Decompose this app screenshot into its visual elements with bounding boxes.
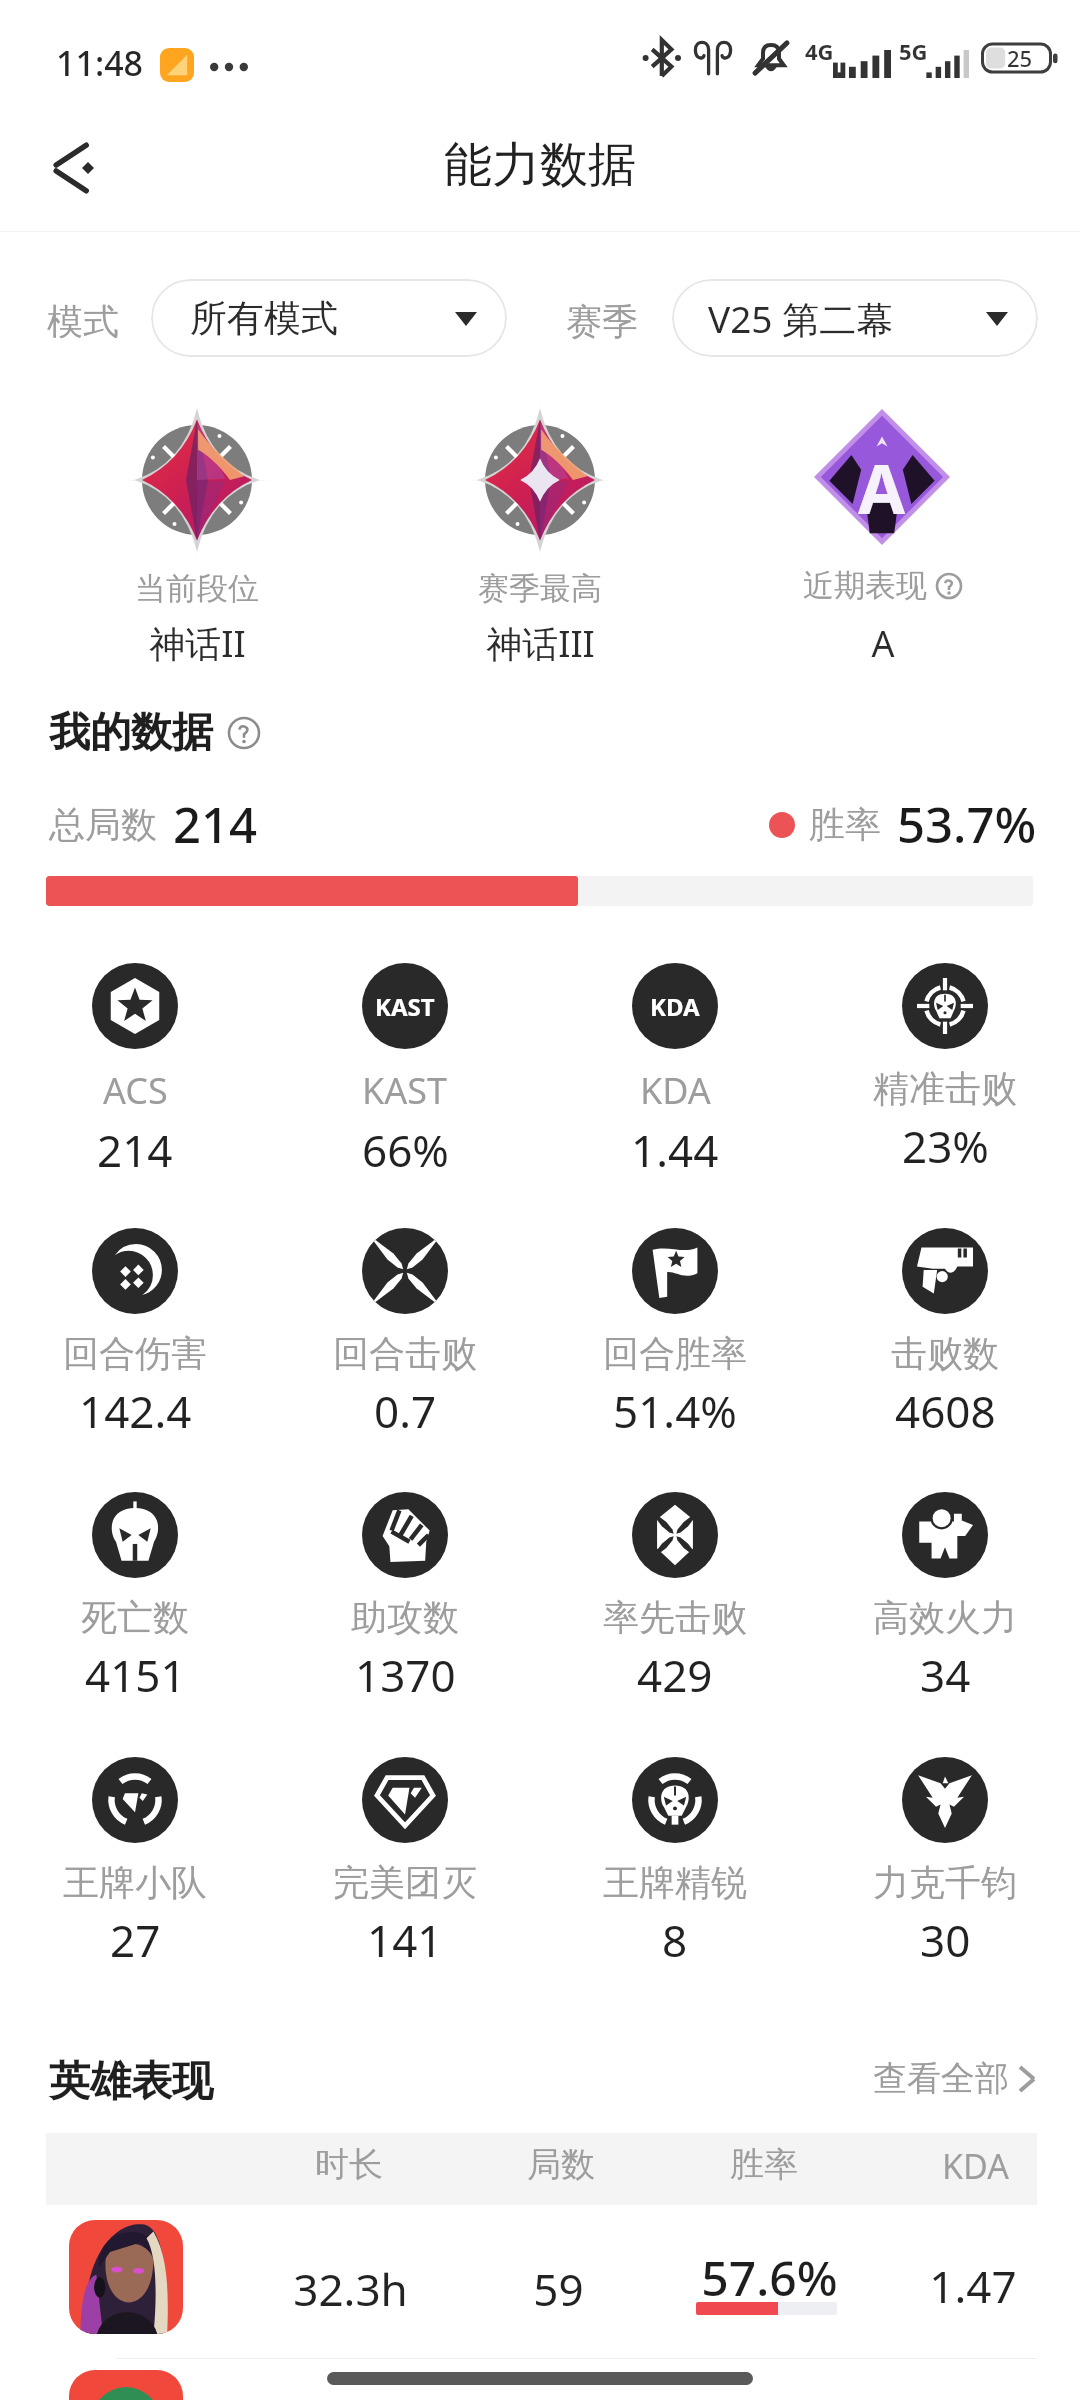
- staticText: 力克千钧: [873, 1860, 1017, 1905]
- staticText: 近期表现: [803, 566, 927, 605]
- button[interactable]: [69, 2370, 183, 2400]
- button[interactable]: 回合击败: [285, 1228, 525, 1441]
- button[interactable]: [69, 2220, 183, 2334]
- staticText: 精准击败: [873, 1066, 1017, 1111]
- staticText: KDA: [650, 990, 700, 1023]
- button[interactable]: KDA: [555, 963, 795, 1180]
- button[interactable]: 查看全部: [873, 2057, 1037, 2100]
- button[interactable]: 精准击败: [825, 963, 1065, 1176]
- staticText: 能力数据: [444, 135, 636, 195]
- staticText: 57.6%: [701, 2245, 838, 2310]
- button[interactable]: 所有模式: [151, 279, 507, 357]
- staticText: 1.44: [631, 1120, 719, 1180]
- staticText: 4608: [895, 1381, 996, 1441]
- staticText: 助攻数: [351, 1595, 459, 1640]
- staticText: 胜率: [809, 802, 881, 847]
- staticText: 高效火力: [873, 1595, 1017, 1640]
- staticText: 1370: [355, 1645, 456, 1705]
- staticText: 23%: [902, 1116, 989, 1176]
- button[interactable]: 完美团灭: [285, 1757, 525, 1970]
- staticText: 214: [97, 1120, 173, 1180]
- staticText: 11:48: [56, 40, 144, 86]
- staticText: 赛季最高: [478, 569, 602, 608]
- staticText: 66%: [362, 1120, 449, 1180]
- staticText: 王牌小队: [63, 1860, 207, 1905]
- staticText: 查看全部: [873, 2057, 1009, 2100]
- staticText: 赛季: [566, 299, 638, 344]
- staticText: A: [858, 441, 906, 534]
- staticText: KAST: [375, 990, 435, 1023]
- staticText: 142.4: [79, 1381, 192, 1441]
- staticText: 27: [110, 1910, 161, 1970]
- staticText: 34: [920, 1645, 971, 1705]
- staticText: 总局数: [49, 802, 157, 847]
- button[interactable]: ACS: [15, 963, 255, 1180]
- staticText: 5G: [899, 36, 928, 66]
- button[interactable]: V25 第二幕: [672, 279, 1038, 357]
- button[interactable]: 高效火力: [825, 1492, 1065, 1705]
- staticText: 模式: [47, 299, 119, 344]
- staticText: 率先击败: [603, 1595, 747, 1640]
- staticText: 神话II: [149, 619, 246, 668]
- staticText: 所有模式: [190, 295, 338, 342]
- staticText: 英雄表现: [49, 2056, 213, 2108]
- staticText: 30: [920, 1910, 971, 1970]
- staticText: 53.7%: [897, 791, 1037, 858]
- staticText: 时长: [315, 2143, 383, 2186]
- staticText: 我的数据: [49, 707, 213, 759]
- button[interactable]: 助攻数: [285, 1492, 525, 1705]
- staticText: 王牌精锐: [603, 1860, 747, 1905]
- staticText: 59: [533, 2259, 584, 2319]
- button[interactable]: 击败数: [825, 1228, 1065, 1441]
- staticText: 25: [1007, 43, 1033, 73]
- staticText: 1.47: [929, 2256, 1017, 2316]
- staticText: 击败数: [891, 1331, 999, 1376]
- staticText: 32.3h: [293, 2259, 408, 2319]
- staticText: 完美团灭: [333, 1860, 477, 1905]
- staticText: 51.4%: [613, 1381, 737, 1441]
- staticText: 141: [367, 1910, 443, 1970]
- staticText: 神话III: [486, 619, 595, 668]
- staticText: A: [871, 619, 895, 668]
- staticText: 回合击败: [333, 1331, 477, 1376]
- staticText: KDA: [942, 2143, 1009, 2189]
- button[interactable]: 力克千钧: [825, 1757, 1065, 1970]
- staticText: 胜率: [730, 2143, 798, 2186]
- button[interactable]: 回合胜率: [555, 1228, 795, 1441]
- staticText: V25 第二幕: [708, 293, 894, 344]
- staticText: 429: [637, 1645, 713, 1705]
- staticText: 214: [173, 791, 258, 858]
- button[interactable]: 王牌精锐: [555, 1757, 795, 1970]
- button[interactable]: 王牌小队: [15, 1757, 255, 1970]
- staticText: 回合伤害: [63, 1331, 207, 1376]
- button[interactable]: KAST: [285, 963, 525, 1180]
- staticText: 8: [662, 1910, 688, 1970]
- staticText: KAST: [362, 1066, 448, 1115]
- staticText: 当前段位: [135, 569, 259, 608]
- staticText: 4G: [805, 36, 834, 66]
- staticText: 局数: [527, 2143, 595, 2186]
- staticText: 回合胜率: [603, 1331, 747, 1376]
- staticText: 0.7: [374, 1381, 437, 1441]
- staticText: KDA: [640, 1066, 711, 1115]
- staticText: 4151: [85, 1645, 186, 1705]
- button[interactable]: 率先击败: [555, 1492, 795, 1705]
- staticText: ACS: [103, 1066, 168, 1115]
- button[interactable]: 死亡数: [15, 1492, 255, 1705]
- button[interactable]: 回合伤害: [15, 1228, 255, 1441]
- staticText: 死亡数: [81, 1595, 189, 1640]
- button[interactable]: Back: [36, 128, 116, 208]
